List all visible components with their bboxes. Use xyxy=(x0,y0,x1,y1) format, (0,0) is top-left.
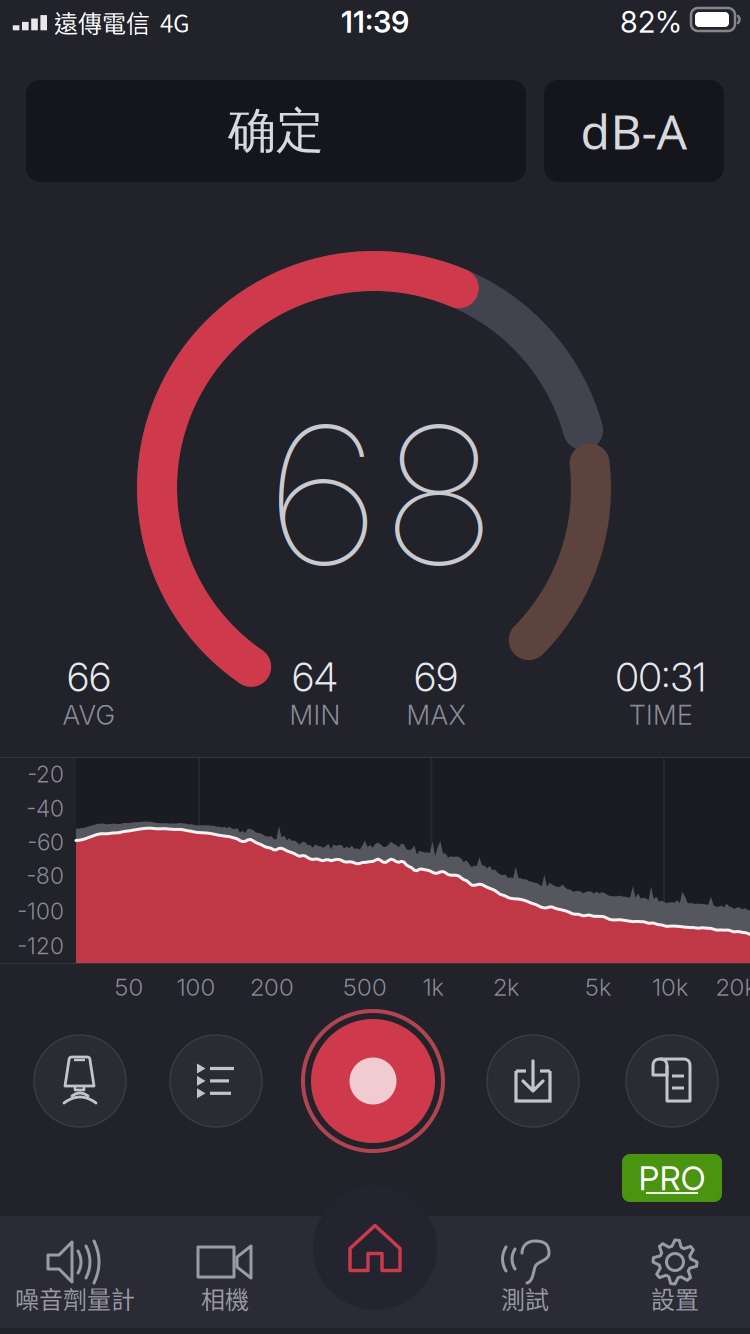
staticText: 相機 xyxy=(201,1281,249,1315)
staticText: 1k xyxy=(422,972,443,1001)
staticText: 69 xyxy=(414,654,458,701)
staticText: dB-A xyxy=(580,99,687,163)
staticText: 82% xyxy=(620,4,682,40)
button[interactable]: PRO xyxy=(622,1154,722,1202)
staticText: 測試 xyxy=(501,1281,549,1315)
staticText: 确定 xyxy=(228,101,324,160)
staticText: MAX xyxy=(406,699,465,731)
staticText: MIN xyxy=(289,699,340,731)
button[interactable]: Measurement list xyxy=(170,1035,262,1127)
staticText: 設置 xyxy=(651,1281,699,1315)
button[interactable]: 噪音劑量計 xyxy=(0,1216,150,1328)
staticText: 200 xyxy=(250,972,294,1001)
button[interactable]: 相機 xyxy=(150,1216,300,1328)
staticText: 68 xyxy=(273,379,489,611)
staticText: 2k xyxy=(493,972,519,1001)
button[interactable]: Record xyxy=(303,1011,443,1151)
staticText: -20 xyxy=(27,761,64,788)
staticText: 20k xyxy=(715,972,750,1001)
staticText: 00:31 xyxy=(615,654,706,701)
staticText: PRO xyxy=(638,1158,705,1198)
staticText: 500 xyxy=(343,972,387,1001)
button[interactable]: Home xyxy=(313,1186,437,1310)
staticText: 64 xyxy=(292,654,338,701)
staticText: AVG xyxy=(62,699,115,731)
staticText: 11:39 xyxy=(341,4,409,40)
staticText: 噪音劑量計 xyxy=(15,1281,135,1315)
button[interactable]: 設置 xyxy=(600,1216,750,1328)
button[interactable]: 測試 xyxy=(450,1216,600,1328)
staticText: -100 xyxy=(17,898,64,925)
staticText: 10k xyxy=(652,972,688,1001)
staticText: 5k xyxy=(585,972,611,1001)
button[interactable]: Save xyxy=(487,1035,579,1127)
staticText: TIME xyxy=(629,699,693,731)
button[interactable]: Calibrate xyxy=(34,1035,126,1127)
staticText: -80 xyxy=(26,862,64,889)
button[interactable]: dB-A xyxy=(544,80,724,182)
staticText: 50 xyxy=(114,972,143,1001)
staticText: -120 xyxy=(17,932,64,960)
button[interactable]: Report xyxy=(626,1035,718,1127)
staticText: 遠傳電信 4G xyxy=(54,5,190,39)
staticText: 66 xyxy=(67,654,111,701)
staticText: -60 xyxy=(27,828,64,856)
staticText: -40 xyxy=(26,795,64,822)
staticText: 100 xyxy=(176,972,215,1001)
button[interactable]: 确定 xyxy=(26,80,526,182)
